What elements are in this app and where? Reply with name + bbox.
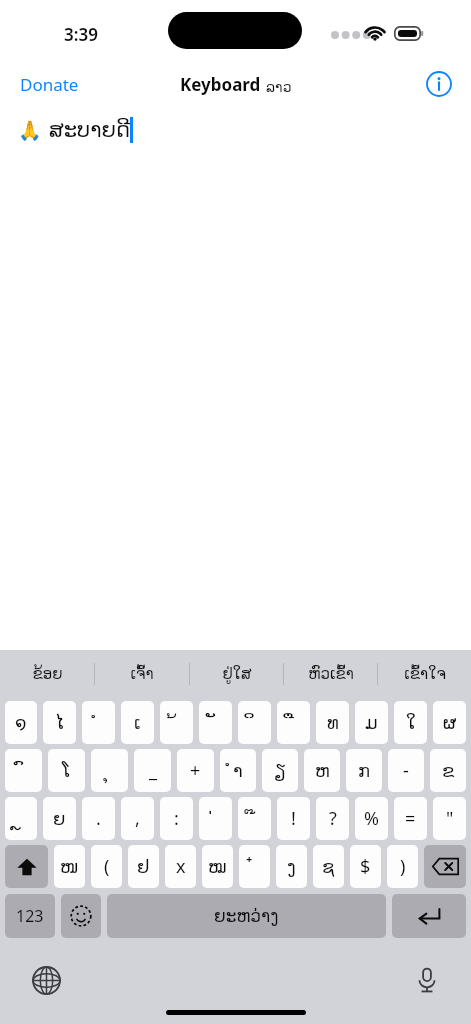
button[interactable]: 123	[5, 894, 55, 938]
button[interactable]: Next keyboard	[24, 958, 68, 1002]
button[interactable]: ໝ	[202, 845, 233, 888]
staticText: ຊ	[322, 856, 335, 877]
button[interactable]: ?	[316, 797, 349, 840]
button[interactable]: _	[134, 749, 171, 792]
button[interactable]: %	[355, 797, 388, 840]
button[interactable]: Backspace	[424, 845, 466, 888]
staticText: !	[291, 806, 296, 831]
button[interactable]: )	[387, 845, 418, 888]
staticText: Donate	[20, 73, 79, 96]
button[interactable]: ທ	[316, 701, 349, 744]
button[interactable]: ່	[199, 797, 232, 840]
staticText: ຢູ່ໃສ	[222, 665, 252, 682]
button[interactable]: ິ	[238, 701, 271, 744]
staticText: :	[174, 806, 179, 831]
button[interactable]: Return	[392, 894, 466, 938]
staticText: ຍະຫວ່າງ	[214, 906, 279, 926]
staticText: ເຈົ້າ	[130, 665, 154, 682]
staticText: ໄ	[55, 712, 64, 733]
button[interactable]: ຍ	[43, 797, 76, 840]
staticText: ງ	[287, 856, 296, 877]
button[interactable]: Dictate	[405, 958, 449, 1002]
button[interactable]: Shift	[5, 845, 48, 888]
staticText: ,	[135, 806, 140, 831]
staticText: ໑	[15, 712, 27, 733]
staticText: ?	[329, 806, 337, 831]
button[interactable]: ຍະຫວ່າງ	[107, 894, 386, 938]
button[interactable]: Emoji	[61, 894, 101, 938]
button[interactable]: ໊	[238, 797, 271, 840]
button[interactable]: ໑	[5, 701, 37, 744]
staticText: 123	[16, 905, 44, 927]
button[interactable]: ,	[121, 797, 154, 840]
staticText: ທ	[327, 712, 339, 733]
button[interactable]: $	[350, 845, 381, 888]
button[interactable]: ຢູ່ໃສ	[190, 650, 283, 697]
button[interactable]: ເ	[121, 701, 154, 744]
button[interactable]: .	[82, 797, 115, 840]
staticText: ໂ	[62, 760, 71, 781]
staticText: 3:39	[64, 23, 98, 46]
staticText: +	[190, 758, 201, 783]
button[interactable]: Info	[422, 67, 456, 101]
staticText: Keyboard	[180, 73, 261, 96]
button[interactable]: ຽ	[262, 749, 298, 792]
button[interactable]: ຼ	[5, 797, 37, 840]
staticText: %	[364, 806, 379, 831]
staticText: ກ	[358, 760, 371, 781]
button[interactable]: !	[277, 797, 310, 840]
staticText: ເ	[134, 712, 141, 733]
staticText: ຫ	[315, 760, 330, 781]
button[interactable]: ຳ	[220, 749, 256, 792]
button[interactable]: ື	[277, 701, 310, 744]
button[interactable]: Donate	[8, 67, 91, 102]
button[interactable]: ຸ	[91, 749, 128, 792]
button[interactable]: x	[165, 845, 196, 888]
button[interactable]: ົ	[5, 749, 42, 792]
button[interactable]: ້	[160, 701, 193, 744]
staticText: ຜ	[443, 712, 457, 733]
button[interactable]: ມ	[355, 701, 388, 744]
staticText: 🙏	[18, 119, 42, 141]
staticText: ໜ	[60, 856, 79, 877]
staticText: (	[104, 854, 110, 879]
button[interactable]: ຊ	[313, 845, 344, 888]
button[interactable]: "	[433, 797, 466, 840]
button[interactable]: -	[388, 749, 424, 792]
button[interactable]: ໄ	[43, 701, 76, 744]
button[interactable]: ເຂົ້າໃຈ	[378, 650, 471, 697]
staticText: .	[96, 806, 101, 831]
staticText: ຂ	[442, 760, 455, 781]
staticText: ຢ	[137, 856, 150, 877]
button[interactable]: :	[160, 797, 193, 840]
staticText: _	[149, 758, 157, 783]
button[interactable]: ເຈົ້າ	[95, 650, 189, 697]
button[interactable]: ຜ	[433, 701, 466, 744]
staticText: ຍ	[53, 808, 66, 829]
staticText: "	[446, 806, 454, 831]
staticText: ຂ້ອຍ	[32, 665, 63, 682]
staticText: )	[400, 854, 406, 879]
button[interactable]: ກ	[346, 749, 382, 792]
button[interactable]: =	[394, 797, 427, 840]
button[interactable]: ງ	[276, 845, 307, 888]
button[interactable]: ໋	[239, 845, 270, 888]
button[interactable]: ໂ	[48, 749, 85, 792]
button[interactable]: ໃ	[394, 701, 427, 744]
button[interactable]: +	[177, 749, 214, 792]
button[interactable]: ຢ	[128, 845, 159, 888]
staticText: ສະບາຍດີ	[49, 118, 130, 142]
staticText: x	[176, 854, 186, 879]
staticText: ຫົວເຂົ້າ	[308, 665, 354, 682]
button[interactable]: (	[91, 845, 122, 888]
button[interactable]: ຂ	[430, 749, 466, 792]
staticText: ເຂົ້າໃຈ	[404, 665, 446, 682]
button[interactable]: ັ	[199, 701, 232, 744]
button[interactable]: ຫ	[304, 749, 340, 792]
staticText: $	[360, 854, 371, 879]
button[interactable]: ຂ້ອຍ	[0, 650, 94, 697]
button[interactable]: ຫົວເຂົ້າ	[284, 650, 377, 697]
button[interactable]: ໍ	[82, 701, 115, 744]
button[interactable]: ໜ	[54, 845, 85, 888]
staticText: =	[405, 806, 416, 831]
